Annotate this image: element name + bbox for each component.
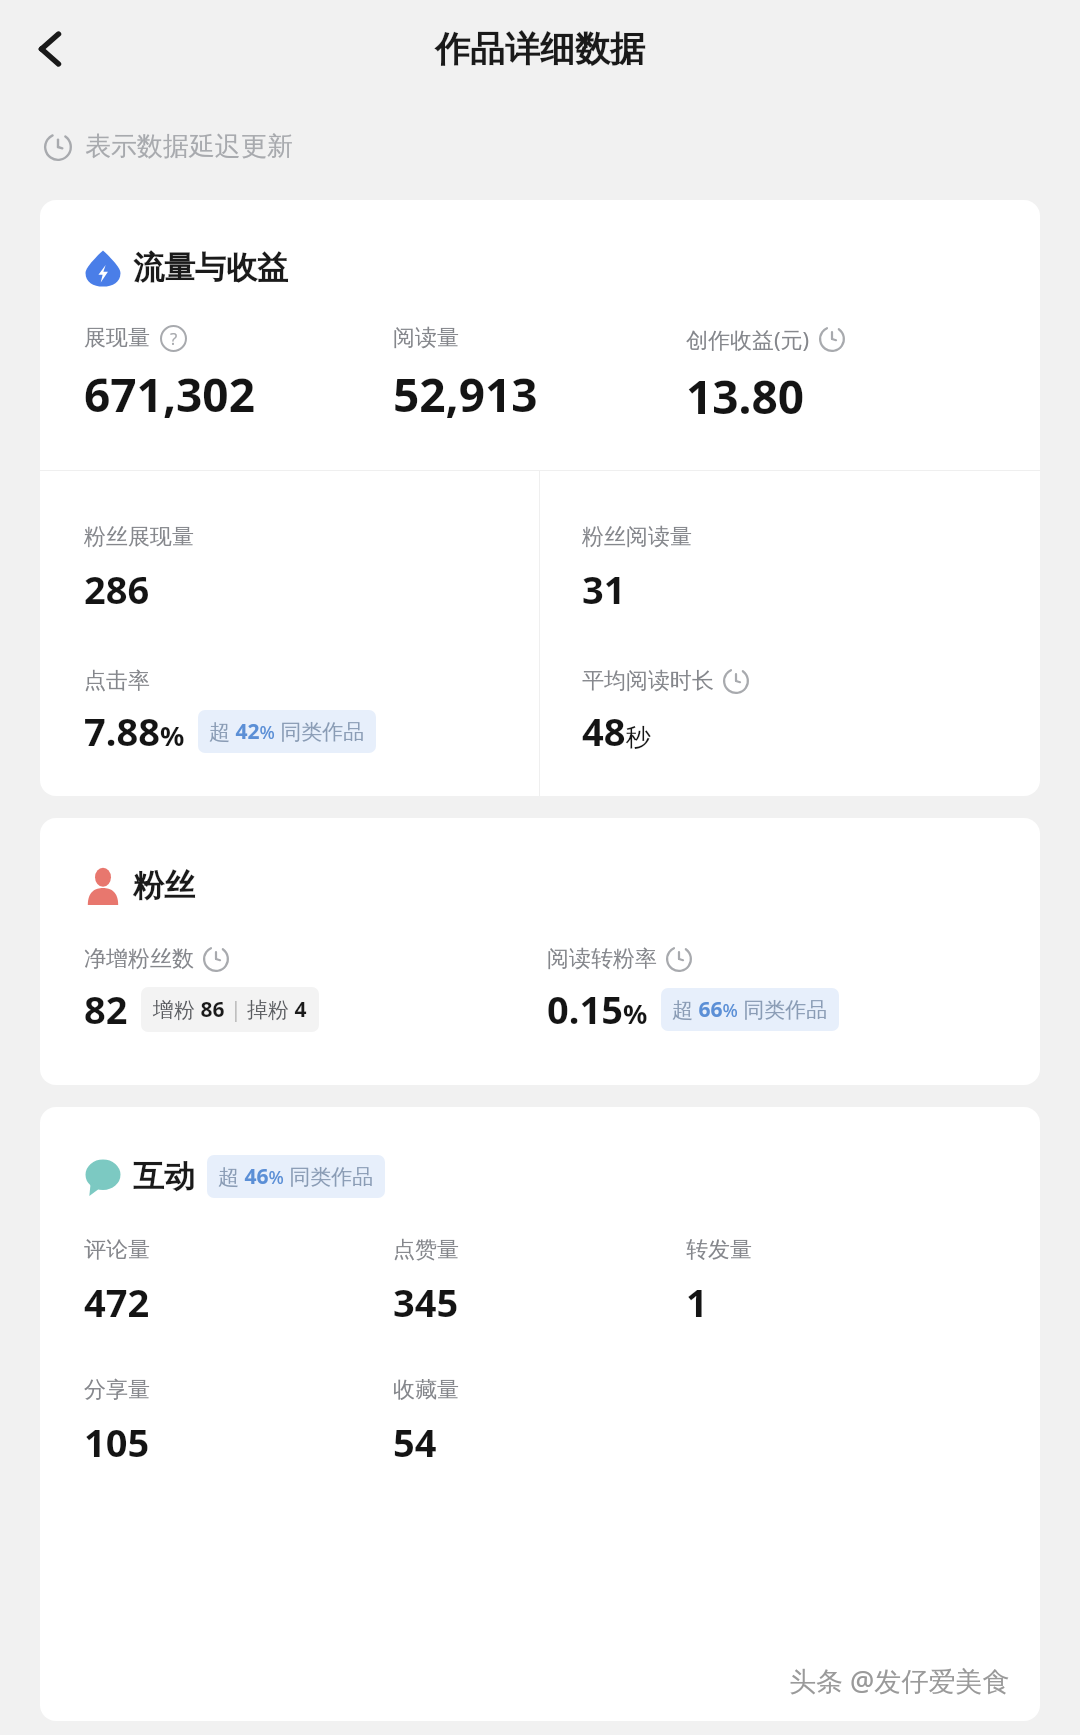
staticText: 7.88% xyxy=(84,705,185,757)
staticText: 展现量 xyxy=(84,324,150,352)
staticText: 粉丝 xyxy=(133,866,195,905)
staticText: 收藏量 xyxy=(393,1376,459,1404)
staticText: 阅读转粉率 xyxy=(547,945,657,973)
staticText: 头条 @发仔爱美食 xyxy=(789,1662,1010,1699)
staticText: 阅读量 xyxy=(393,324,459,352)
button[interactable]: Back xyxy=(18,16,84,82)
staticText: 13.80 xyxy=(686,365,805,428)
staticText: 52,913 xyxy=(393,363,538,426)
staticText: 粉丝阅读量 xyxy=(582,523,692,551)
staticText: 82 xyxy=(84,983,128,1035)
staticText: 增粉 86 | 掉粉 4 xyxy=(153,995,307,1024)
staticText: 48秒 xyxy=(582,705,651,757)
staticText: 作品详细数据 xyxy=(435,27,645,71)
staticText: 671,302 xyxy=(84,363,255,426)
staticText: 472 xyxy=(84,1276,150,1328)
staticText: 转发量 xyxy=(686,1236,752,1264)
staticText: 0.15% xyxy=(547,983,648,1035)
staticText: 超 42% 同类作品 xyxy=(209,717,365,746)
staticText: 流量与收益 xyxy=(133,248,288,287)
staticText: 1 xyxy=(686,1276,708,1328)
staticText: 粉丝展现量 xyxy=(84,523,194,551)
staticText: 表示数据延迟更新 xyxy=(85,130,293,163)
staticText: 平均阅读时长 xyxy=(582,667,714,695)
staticText: 105 xyxy=(84,1416,150,1468)
staticText: 分享量 xyxy=(84,1376,150,1404)
staticText: 31 xyxy=(582,563,626,615)
staticText: 286 xyxy=(84,563,150,615)
staticText: 345 xyxy=(393,1276,459,1328)
staticText: 点赞量 xyxy=(393,1236,459,1264)
staticText: 超 46% 同类作品 xyxy=(218,1162,374,1191)
staticText: 54 xyxy=(393,1416,437,1468)
staticText: ? xyxy=(170,327,178,350)
staticText: 净增粉丝数 xyxy=(84,945,194,973)
staticText: 点击率 xyxy=(84,667,150,695)
staticText: 创作收益(元) xyxy=(686,324,810,354)
staticText: 评论量 xyxy=(84,1236,150,1264)
staticText: 互动 xyxy=(133,1157,195,1196)
staticText: 超 66% 同类作品 xyxy=(672,995,828,1024)
